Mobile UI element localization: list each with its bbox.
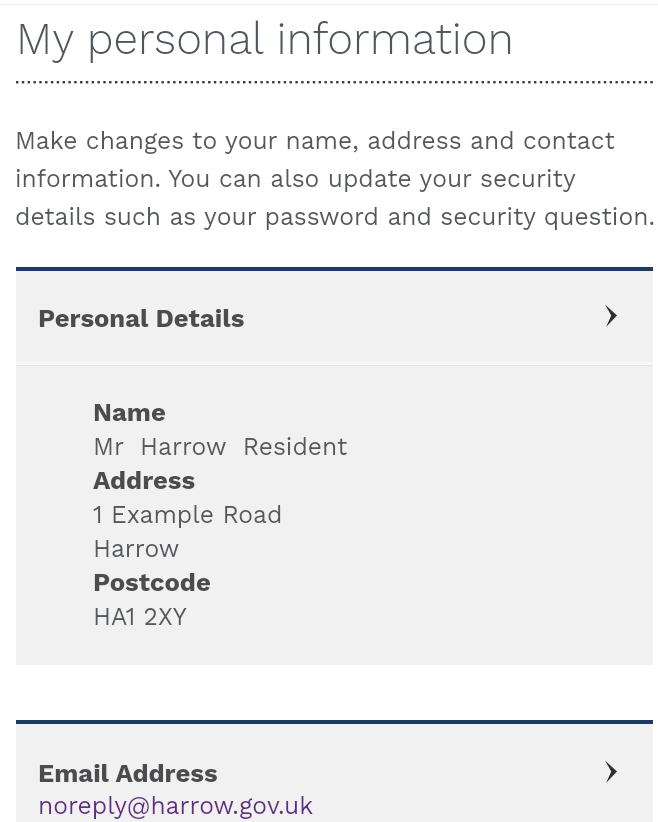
staticText: Address bbox=[93, 462, 196, 496]
staticText: Personal Details bbox=[38, 303, 245, 333]
staticText: Mr Harrow Resident bbox=[93, 428, 348, 462]
staticText: HA1 2XY bbox=[93, 598, 187, 632]
other: Open section bbox=[605, 304, 617, 327]
staticText: My personal information bbox=[16, 11, 514, 65]
other: Open section bbox=[605, 760, 617, 783]
staticText: Postcode bbox=[93, 564, 211, 598]
staticText: Email Address bbox=[38, 758, 218, 788]
staticText: Harrow bbox=[93, 530, 180, 564]
staticText: Name bbox=[93, 394, 166, 428]
staticText: Make changes to your name, address and c… bbox=[15, 119, 658, 233]
staticText: 1 Example Road bbox=[93, 496, 283, 530]
button[interactable]: Email Address bbox=[16, 724, 653, 822]
button[interactable]: Personal Details bbox=[16, 271, 653, 362]
staticText: noreply@harrow.gov.uk bbox=[38, 787, 314, 821]
